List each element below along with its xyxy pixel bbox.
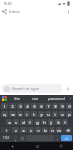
- button[interactable]: can: [26, 95, 44, 102]
- staticText: u: [47, 112, 50, 117]
- button[interactable]: r: [24, 111, 30, 117]
- button[interactable]: 2: [9, 103, 16, 109]
- staticText: w: [11, 112, 15, 117]
- staticText: t: [33, 112, 35, 117]
- staticText: j: [50, 120, 52, 125]
- staticText: z: [15, 128, 17, 133]
- staticText: o: [61, 112, 64, 117]
- button[interactable]: Backspace: [63, 127, 72, 133]
- button[interactable]: Emoji: [19, 135, 25, 141]
- button[interactable]: Add: [64, 85, 71, 92]
- button[interactable]: t: [31, 111, 37, 117]
- button[interactable]: q: [1, 111, 8, 117]
- staticText: 1: [3, 104, 6, 109]
- button[interactable]: Google: [2, 96, 7, 101]
- button[interactable]: Back: [0, 142, 25, 150]
- button[interactable]: z: [12, 127, 19, 133]
- staticText: 2: [11, 104, 14, 109]
- button[interactable]: Shift: [1, 127, 11, 133]
- button[interactable]: n: [49, 127, 55, 133]
- button[interactable]: m: [56, 127, 62, 133]
- button[interactable]: h: [41, 119, 47, 125]
- staticText: ?123: [3, 136, 10, 140]
- button[interactable]: c: [28, 127, 34, 133]
- button[interactable]: u: [45, 111, 51, 117]
- button[interactable]: 3: [17, 103, 23, 109]
- button[interactable]: the: [7, 95, 26, 102]
- staticText: a: [8, 120, 11, 125]
- button[interactable]: Home: [25, 142, 49, 150]
- button[interactable]: Enter: [61, 135, 72, 141]
- button[interactable]: 9: [59, 103, 65, 109]
- staticText: i: [54, 112, 56, 117]
- button[interactable]: 7: [45, 103, 51, 109]
- button[interactable]: o: [59, 111, 65, 117]
- button[interactable]: 6: [38, 103, 44, 109]
- button[interactable]: 5: [31, 103, 37, 109]
- button[interactable]: ,: [13, 135, 18, 141]
- button[interactable]: More options: [64, 7, 73, 16]
- button[interactable]: a: [6, 119, 12, 125]
- button[interactable]: f: [27, 119, 33, 125]
- button[interactable]: x: [20, 127, 27, 133]
- staticText: e: [19, 112, 22, 117]
- staticText: ,: [15, 136, 16, 141]
- staticText: l: [64, 120, 66, 125]
- button[interactable]: k: [55, 119, 61, 125]
- button[interactable]: l: [62, 119, 68, 125]
- staticText: y: [40, 112, 43, 117]
- staticText: x: [22, 128, 25, 133]
- staticText: Inbox: [9, 9, 20, 14]
- button[interactable]: 1: [1, 103, 8, 109]
- button[interactable]: e: [17, 111, 23, 117]
- staticText: k: [57, 120, 60, 125]
- staticText: m: [57, 128, 61, 133]
- staticText: can: [32, 96, 38, 101]
- staticText: h: [43, 120, 46, 125]
- staticText: 3: [19, 104, 22, 109]
- staticText: 9:41: [4, 1, 12, 6]
- staticText: 9: [61, 104, 64, 109]
- staticText: d: [22, 120, 25, 125]
- staticText: q: [3, 112, 6, 117]
- button[interactable]: password: [44, 95, 68, 102]
- staticText: n: [51, 128, 54, 133]
- button[interactable]: s: [13, 119, 19, 125]
- staticText: r: [26, 112, 28, 117]
- staticText: p: [68, 112, 71, 117]
- button[interactable]: w: [9, 111, 16, 117]
- button[interactable]: j: [48, 119, 54, 125]
- button[interactable]: i: [52, 111, 58, 117]
- button[interactable]: ?123: [1, 135, 12, 141]
- staticText: g: [36, 120, 39, 125]
- button[interactable]: v: [35, 127, 41, 133]
- staticText: 7: [47, 104, 50, 109]
- button[interactable]: Share: [0, 7, 9, 16]
- staticText: password: [48, 96, 65, 101]
- staticText: the: [14, 96, 20, 101]
- button[interactable]: 0: [66, 103, 72, 109]
- staticText: .: [57, 136, 58, 141]
- staticText: Search or type: [12, 86, 40, 91]
- staticText: b: [44, 128, 47, 133]
- staticText: 8: [54, 104, 57, 109]
- staticText: 5: [33, 104, 36, 109]
- button[interactable]: 8: [52, 103, 58, 109]
- staticText: 4: [26, 104, 29, 109]
- button[interactable]: d: [20, 119, 26, 125]
- button[interactable]: y: [38, 111, 44, 117]
- button[interactable]: p: [66, 111, 72, 117]
- staticText: v: [37, 128, 40, 133]
- button[interactable]: g: [34, 119, 40, 125]
- button[interactable]: Search or type: [2, 84, 62, 93]
- staticText: f: [29, 120, 31, 125]
- staticText: 6: [40, 104, 43, 109]
- button[interactable]: 4: [24, 103, 30, 109]
- button[interactable]: .: [55, 135, 60, 141]
- button[interactable]: b: [42, 127, 48, 133]
- staticText: c: [30, 128, 32, 133]
- button[interactable]: Recent apps: [49, 142, 73, 150]
- staticText: 0: [68, 104, 71, 109]
- button[interactable]: Expand suggestions: [68, 95, 73, 102]
